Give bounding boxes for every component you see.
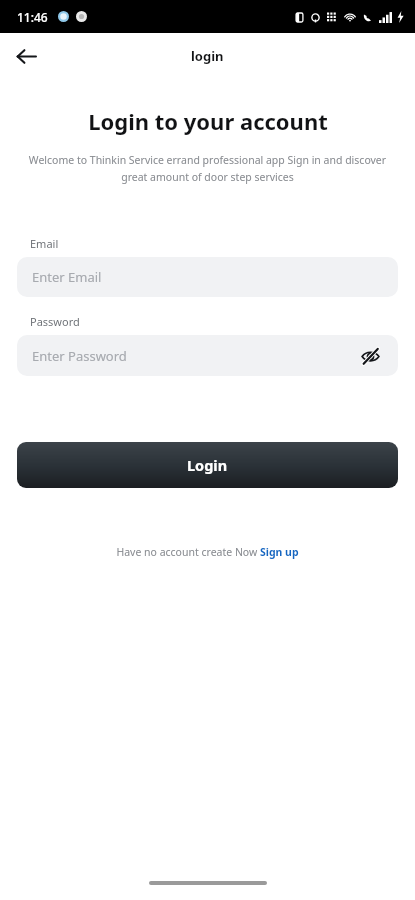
staticText: Email [30, 236, 59, 251]
staticText: Login to your account [88, 106, 328, 136]
button[interactable]: Enter Password [17, 335, 398, 376]
staticText: Welcome to Thinkin Service errand profes… [17, 153, 398, 184]
staticText: Password [30, 314, 80, 329]
staticText: Login [187, 455, 228, 475]
staticText: Enter Email [32, 268, 102, 286]
staticText: login [191, 47, 224, 65]
button[interactable]: Show password [357, 343, 383, 369]
staticText: 11:46 [17, 9, 48, 25]
staticText: Enter Password [32, 347, 127, 365]
staticText: Have no account create Now Sign up [116, 545, 299, 559]
button[interactable]: Login [17, 442, 398, 488]
button[interactable]: Enter Email [17, 257, 398, 297]
button[interactable]: Back [6, 36, 46, 76]
button[interactable]: Have no account create Now Sign up [108, 541, 307, 563]
